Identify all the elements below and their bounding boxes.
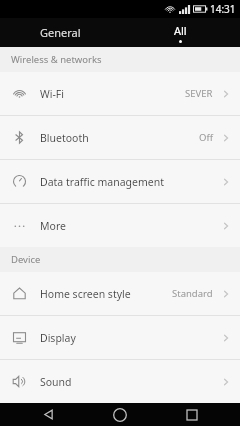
- button[interactable]: General: [0, 18, 120, 47]
- button[interactable]: Bluetooth: [0, 116, 240, 159]
- staticText: Sound: [40, 375, 72, 389]
- button[interactable]: Sound: [0, 360, 240, 403]
- staticText: Standard: [172, 287, 213, 300]
- staticText: Off: [199, 131, 213, 144]
- staticText: Home screen style: [40, 287, 131, 301]
- staticText: All: [174, 23, 187, 38]
- staticText: Display: [40, 331, 76, 345]
- staticText: General: [40, 25, 81, 40]
- button[interactable]: More: [0, 204, 240, 247]
- button[interactable]: Data traffic management: [0, 160, 240, 203]
- button[interactable]: Wi-Fi: [0, 72, 240, 115]
- button[interactable]: Home: [96, 403, 144, 426]
- button[interactable]: Recent apps: [168, 403, 216, 426]
- staticText: Data traffic management: [40, 175, 164, 189]
- staticText: SEVER: [185, 87, 213, 100]
- staticText: Device: [11, 253, 41, 266]
- button[interactable]: Display: [0, 316, 240, 359]
- button[interactable]: Home screen style: [0, 272, 240, 315]
- staticText: Wireless & networks: [11, 53, 102, 66]
- staticText: Wi-Fi: [40, 87, 65, 101]
- button[interactable]: All: [120, 18, 240, 47]
- staticText: Bluetooth: [40, 131, 89, 145]
- button[interactable]: Back: [24, 403, 72, 426]
- staticText: 14:31: [210, 2, 236, 16]
- staticText: More: [40, 219, 66, 233]
